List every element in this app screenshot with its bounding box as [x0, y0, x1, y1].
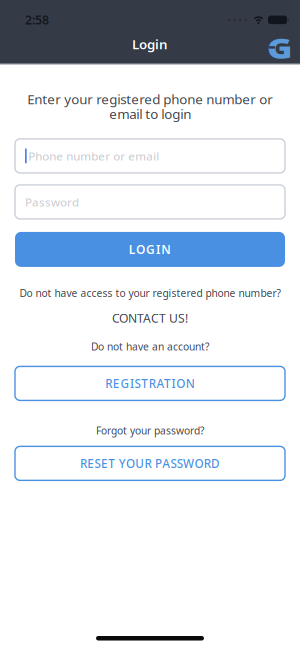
staticText: Password: [25, 194, 79, 210]
button[interactable]: REGISTRATION: [15, 366, 285, 400]
staticText: Do not have access to your registered ph…: [19, 286, 280, 300]
staticText: REGISTRATION: [105, 375, 195, 391]
button[interactable]: CONTACT US!: [112, 310, 188, 326]
staticText: Enter your registered phone number or em…: [27, 90, 273, 123]
staticText: LOGIN: [129, 241, 171, 257]
staticText: CONTACT US!: [112, 310, 188, 326]
staticText: Do not have an account?: [91, 339, 209, 353]
textField[interactable]: Password: [15, 185, 285, 219]
staticText: Login: [132, 35, 168, 53]
textField[interactable]: Phone number or email: [15, 139, 285, 173]
staticText: 2:58: [25, 11, 49, 28]
staticText: G: [269, 29, 290, 67]
staticText: RESET YOUR PASSWORD: [80, 455, 220, 471]
staticText: Forgot your password?: [96, 423, 204, 437]
button[interactable]: LOGIN: [15, 232, 285, 267]
button[interactable]: RESET YOUR PASSWORD: [15, 446, 285, 480]
staticText: Phone number or email: [28, 148, 159, 164]
